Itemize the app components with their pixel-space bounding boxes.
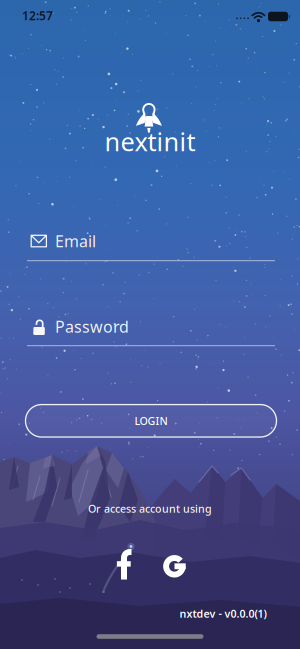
staticText: LOGIN bbox=[134, 414, 167, 428]
button[interactable]: LOGIN bbox=[25, 405, 276, 437]
staticText: Or access account using bbox=[88, 501, 212, 516]
staticText: Password bbox=[55, 316, 129, 337]
button[interactable]: Email bbox=[0, 221, 300, 265]
staticText: Email bbox=[55, 230, 96, 252]
staticText: nxtdev - v0.0.0(1) bbox=[179, 606, 266, 621]
button[interactable]: Log in with Facebook bbox=[106, 546, 140, 584]
staticText: 12:57 bbox=[22, 7, 53, 23]
button[interactable]: Password bbox=[0, 306, 300, 350]
staticText: nextinit bbox=[104, 125, 195, 158]
button[interactable]: Log in with Google bbox=[157, 547, 191, 585]
